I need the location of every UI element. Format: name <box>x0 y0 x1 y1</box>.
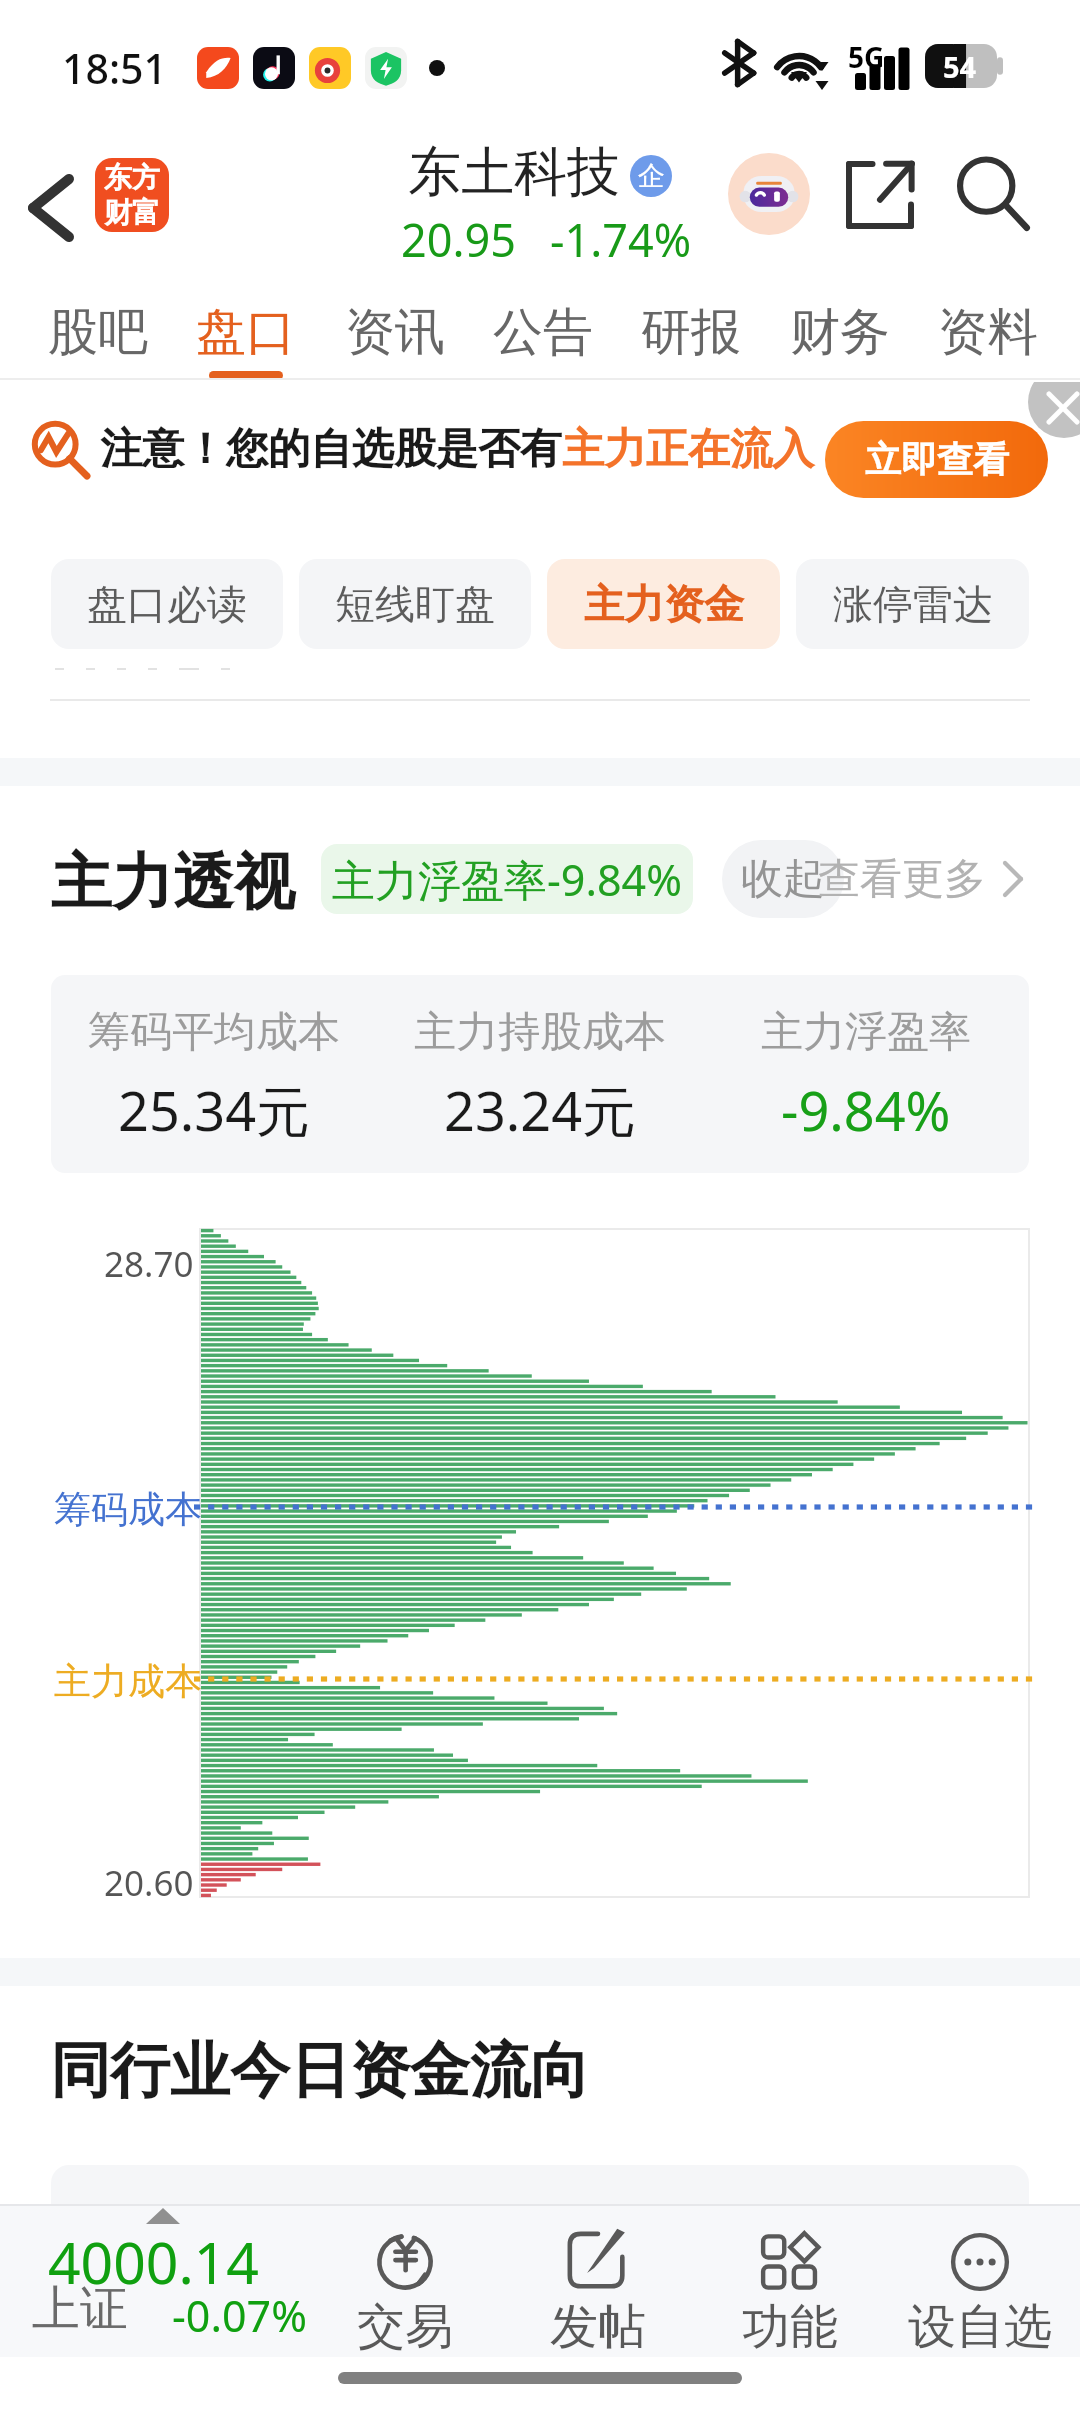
staticText: 同行业今日资金流向 <box>50 2033 590 2109</box>
button[interactable]: 涨停雷达 <box>796 559 1029 649</box>
button[interactable]: 财务 <box>780 275 900 371</box>
staticText: 筹码平均成本 <box>88 1006 340 1059</box>
staticText: 20.95 <box>401 209 517 270</box>
staticText: 研报 <box>641 301 741 364</box>
button[interactable]: AI assistant <box>728 153 810 235</box>
button[interactable]: Search <box>946 147 1042 243</box>
button[interactable]: 主力资金 <box>547 559 780 649</box>
staticText: 公告 <box>493 301 593 364</box>
staticText: 28.70 <box>104 1240 194 1288</box>
staticText: 主力成本 <box>54 1658 202 1705</box>
button[interactable]: 发帖 <box>502 2204 694 2357</box>
staticText: 发帖 <box>550 2297 646 2357</box>
button[interactable]: 主力浮盈率-9.84% <box>321 844 693 914</box>
staticText: 注意！您的自选股是否有 <box>100 423 562 476</box>
staticText: 54 <box>943 47 977 86</box>
staticText: 东土科技 <box>408 139 620 206</box>
button[interactable]: 研报 <box>631 275 751 371</box>
staticText: 收起 <box>741 853 825 906</box>
staticText: 资讯 <box>345 301 445 364</box>
staticText: 主力正在流入 <box>562 423 814 476</box>
staticText: 18:51 <box>62 40 167 96</box>
button[interactable]: 4000.14 <box>10 2204 330 2357</box>
button[interactable]: 设自选 <box>884 2204 1076 2357</box>
staticText: 主力持股成本 <box>414 1006 666 1059</box>
button[interactable]: Close banner <box>1028 382 1080 438</box>
staticText: 主力浮盈率 <box>761 1006 971 1059</box>
staticText: 涨停雷达 <box>833 579 993 629</box>
staticText: 盘口 <box>196 301 296 364</box>
staticText: 上证 <box>32 2279 128 2339</box>
staticText: -1.74% <box>550 209 692 270</box>
button[interactable]: 资讯 <box>335 275 455 371</box>
staticText: 4000.14 <box>48 2223 259 2301</box>
staticText: 5G <box>848 38 885 76</box>
button[interactable]: 查看更多 <box>818 840 1024 918</box>
staticText: 主力资金 <box>584 579 744 629</box>
staticText: 筹码成本 <box>54 1486 202 1533</box>
staticText: 23.24元 <box>444 1073 637 1147</box>
button[interactable]: 公告 <box>483 275 603 371</box>
staticText: 立即查看 <box>865 437 1009 482</box>
button[interactable]: Share <box>832 147 928 243</box>
button[interactable]: Back <box>10 168 90 248</box>
staticText: 25.34元 <box>118 1073 311 1147</box>
staticText: 盘口必读 <box>87 579 247 629</box>
button[interactable]: 股吧 <box>38 275 158 371</box>
button[interactable]: 立即查看 <box>825 421 1048 498</box>
staticText: 功能 <box>742 2297 838 2357</box>
staticText: 主力浮盈率-9.84% <box>332 850 682 909</box>
staticText: 资料 <box>938 301 1038 364</box>
staticText: 短线盯盘 <box>335 579 495 629</box>
button[interactable]: 短线盯盘 <box>299 559 531 649</box>
staticText: 查看更多 <box>818 853 986 906</box>
staticText: 设自选 <box>908 2297 1052 2357</box>
staticText: 东方 <box>104 160 160 195</box>
staticText: 股吧 <box>48 301 148 364</box>
staticText: 20.60 <box>104 1859 194 1907</box>
staticText: 企 <box>638 159 665 193</box>
button[interactable]: 盘口必读 <box>51 559 283 649</box>
staticText: -9.84% <box>781 1073 951 1147</box>
staticText: 财务 <box>790 301 890 364</box>
staticText: 主力透视 <box>51 844 295 921</box>
button[interactable]: 盘口 <box>186 275 306 380</box>
button[interactable]: 收起 <box>722 840 844 918</box>
staticText: 交易 <box>357 2297 453 2357</box>
button[interactable]: 功能 <box>694 2204 886 2357</box>
button[interactable]: 交易 <box>309 2204 501 2357</box>
button[interactable]: East Money home <box>95 158 169 232</box>
button[interactable]: 资料 <box>928 275 1048 371</box>
staticText: 财富 <box>104 195 160 230</box>
staticText: -0.07% <box>172 2286 307 2345</box>
